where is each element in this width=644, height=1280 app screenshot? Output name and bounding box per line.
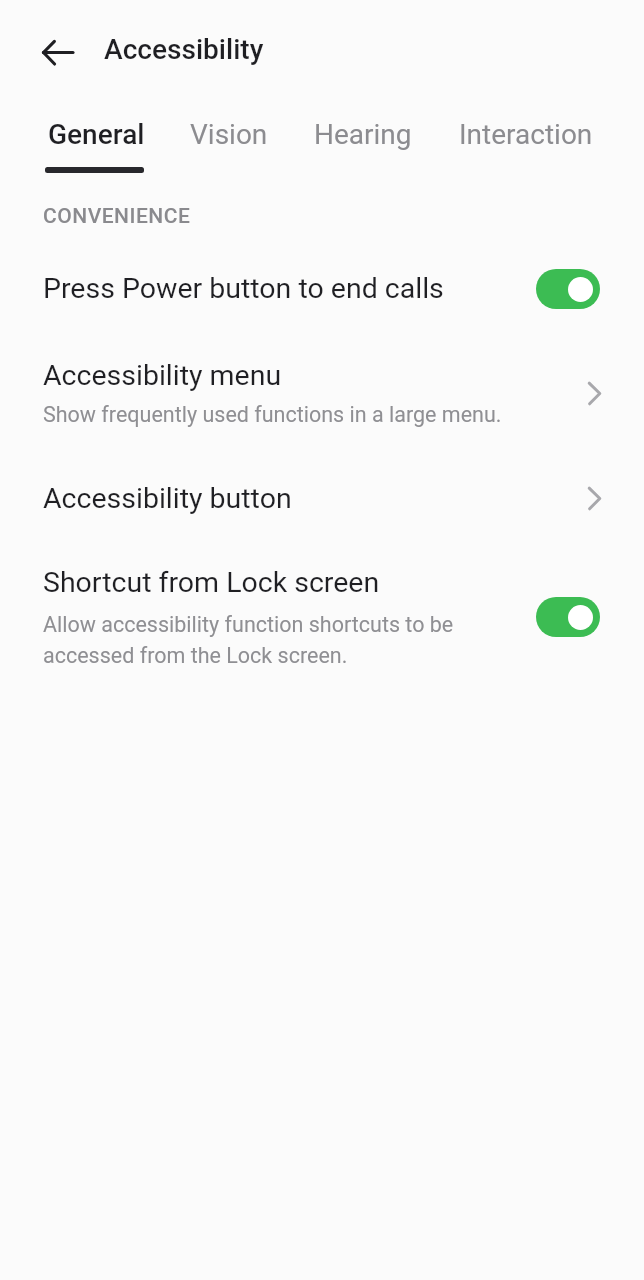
staticText: General [48,118,145,151]
button[interactable]: Press Power button to end calls [0,247,644,330]
button[interactable] [27,26,89,78]
button[interactable] [536,269,600,309]
staticText: Allow accessibility function shortcuts t… [43,612,454,637]
staticText: Hearing [314,118,412,151]
staticText: Show frequently used functions in a larg… [43,402,502,427]
button[interactable]: Hearing [307,112,419,156]
button[interactable]: Interaction [453,112,599,156]
button[interactable]: Shortcut from Lock screen [0,548,644,688]
staticText: Accessibility button [43,482,292,515]
staticText: Accessibility [104,33,264,66]
button[interactable]: Accessibility button [0,460,644,536]
staticText: accessed from the Lock screen. [43,643,348,668]
staticText: Vision [190,118,268,151]
staticText: CONVENIENCE [43,204,191,228]
staticText: Shortcut from Lock screen [43,566,380,599]
button[interactable]: General [40,112,152,156]
staticText: Press Power button to end calls [43,272,444,305]
staticText: Accessibility menu [43,359,282,392]
button[interactable]: Vision [184,112,274,156]
button[interactable]: Accessibility menu [0,345,644,449]
staticText: Interaction [459,118,593,151]
button[interactable] [536,597,600,637]
